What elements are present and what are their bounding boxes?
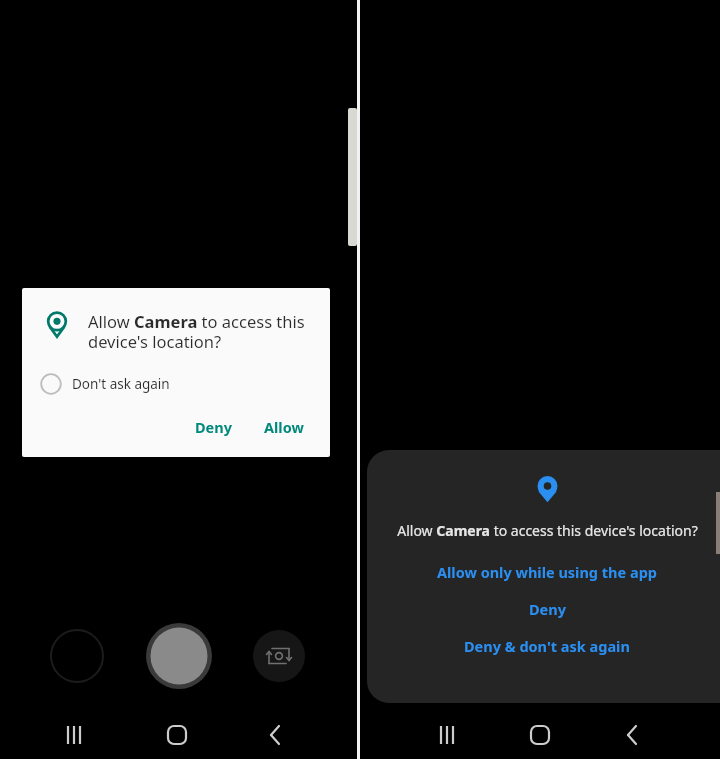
button[interactable]: Back [259, 711, 295, 759]
button[interactable]: Deny & don't ask again [367, 636, 720, 656]
button[interactable]: Shutter [146, 623, 212, 689]
staticText: Allow Camera to access this device's loc… [88, 310, 312, 353]
staticText: Allow [264, 417, 304, 437]
staticText: Allow Camera to access this device's loc… [397, 521, 698, 540]
button[interactable]: Gallery [50, 629, 104, 683]
staticText: Allow only while using the app [437, 562, 657, 582]
button[interactable]: Recents [56, 711, 92, 759]
button[interactable]: Deny [185, 409, 242, 445]
button[interactable]: Recents [429, 711, 465, 759]
staticText: Don't ask again [72, 375, 170, 393]
staticText: Deny [529, 599, 566, 619]
button[interactable]: Back [616, 711, 652, 759]
button[interactable]: Home [159, 711, 195, 759]
button[interactable]: Allow only while using the app [367, 562, 720, 582]
button[interactable]: Deny [367, 599, 720, 619]
button[interactable]: Don't ask again [40, 373, 312, 395]
button[interactable]: Home [522, 711, 558, 759]
button[interactable]: Allow [254, 409, 314, 445]
staticText: Deny [195, 417, 232, 437]
button[interactable]: Switch camera [253, 630, 305, 682]
staticText: Deny & don't ask again [464, 636, 630, 656]
